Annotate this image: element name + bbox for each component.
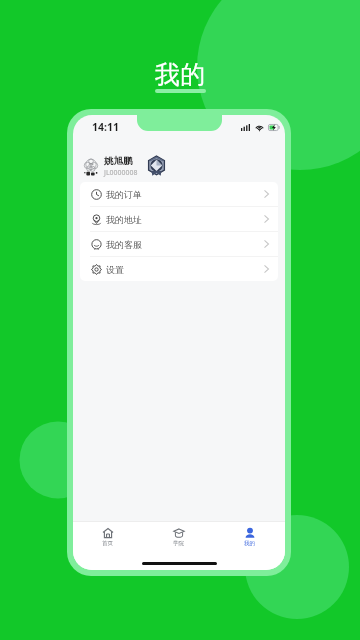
button[interactable]: 我的订单 xyxy=(80,182,278,206)
button[interactable]: 姚旭鹏 xyxy=(84,155,138,178)
staticText: 姚旭鹏 xyxy=(104,155,133,167)
staticText: 我的客服 xyxy=(106,239,142,250)
staticText: 我的地址 xyxy=(106,214,142,225)
staticText: 首页 xyxy=(102,540,114,547)
button[interactable]: 学院 xyxy=(143,522,214,547)
button[interactable]: 会员等级徽章 xyxy=(147,156,166,176)
staticText: JL0000008 xyxy=(104,168,138,178)
button[interactable]: 我的 xyxy=(214,522,285,547)
button[interactable]: 我的客服 xyxy=(80,232,278,256)
button[interactable]: 我的地址 xyxy=(80,207,278,231)
staticText: 学院 xyxy=(173,540,185,547)
staticText: 我的 xyxy=(155,59,205,90)
button[interactable]: 设置 xyxy=(80,257,278,281)
staticText: 我的订单 xyxy=(106,189,142,200)
staticText: 14:11 xyxy=(92,120,119,134)
button[interactable]: 首页 xyxy=(73,522,143,547)
staticText: 设置 xyxy=(106,264,124,275)
staticText: 我的 xyxy=(244,540,256,547)
